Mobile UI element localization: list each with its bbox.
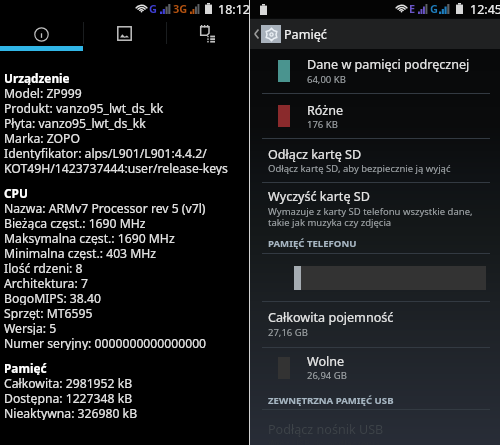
button[interactable]: Sprzęt	[166, 18, 249, 51]
staticText: 26,94 GB	[307, 369, 347, 382]
button[interactable]: Całkowita pojemność	[268, 309, 500, 326]
button[interactable]: Dane w pamięci podręcznej	[250, 56, 500, 86]
staticText: Produkt: vanzo95_lwt_ds_kk	[4, 100, 164, 115]
staticText: 64,00 KB	[307, 73, 346, 86]
button[interactable]: Zdjęcia	[83, 18, 166, 51]
staticText: Całkowita pojemność	[268, 309, 394, 326]
staticText: G	[430, 1, 438, 16]
staticText: 18:12	[218, 1, 250, 18]
other: Sprzęt	[200, 25, 215, 43]
button[interactable]: Wyczyść kartę SD	[268, 188, 500, 205]
button[interactable]: 27,16 GB	[268, 326, 500, 339]
staticText: KOT49H/1423737444:user/release-keys	[4, 160, 228, 175]
button[interactable]: Wymazuje z karty SD telefonu wszystkie d…	[268, 205, 500, 218]
staticText: G	[149, 1, 157, 16]
button[interactable]: Informacje	[0, 18, 83, 51]
staticText: Odłącz kartę SD, aby bezpiecznie ją wyją…	[268, 162, 451, 175]
staticText: Urządzenie	[4, 70, 70, 85]
staticText: Minimalna częst.: 403 MHz	[4, 245, 157, 260]
button[interactable]: Podłącz nośnik USB	[268, 421, 500, 438]
staticText: Ilość rdzeni: 8	[4, 260, 83, 275]
staticText: Różne	[307, 102, 344, 119]
staticText: 27,16 GB	[268, 326, 308, 339]
button[interactable]: Wolne	[250, 353, 500, 383]
staticText: Podłącz nośnik USB	[268, 421, 384, 438]
staticText: Wyczyść kartę SD	[268, 188, 370, 205]
staticText: 3G	[173, 1, 188, 16]
staticText: Model: ZP999	[4, 85, 82, 100]
other: Ustawienia	[265, 28, 278, 41]
staticText: Marka: ZOPO	[4, 130, 80, 145]
staticText: 176 KB	[307, 118, 338, 131]
button[interactable]: Odłącz kartę SD	[268, 146, 500, 163]
other: Informacje	[34, 27, 49, 42]
staticText: PAMIĘĆ TELEFONU	[268, 237, 357, 250]
staticText: Nazwa: ARMv7 Processor rev 5 (v7l)	[4, 200, 206, 215]
button[interactable]: Różne	[250, 102, 500, 132]
button[interactable]: Wstecz	[250, 19, 500, 49]
staticText: Wolne	[307, 353, 345, 370]
staticText: CPU	[4, 185, 28, 200]
staticText: Numer seryjny: 0000000000000000	[4, 335, 207, 350]
staticText: Pamięć	[4, 360, 47, 375]
staticText: Wymazuje z karty SD telefonu wszystkie d…	[268, 205, 473, 218]
staticText: Bieżąca częst.: 1690 MHz	[4, 215, 146, 230]
staticText: Identyfikator: alps/L901/L901:4.4.2/	[4, 145, 207, 160]
staticText: BogoMIPS: 38.40	[4, 290, 102, 305]
staticText: Pamięć	[284, 26, 327, 43]
staticText: takie jak muzyka czy zdjęcia	[268, 216, 392, 229]
staticText: 12:45	[470, 1, 500, 18]
staticText: Dostępna: 1227348 kB	[4, 390, 133, 405]
staticText: Architektura: 7	[4, 275, 88, 290]
staticText: ZEWNĘTRZNA PAMIĘĆ USB	[268, 394, 394, 407]
staticText: Maksymalna częst.: 1690 MHz	[4, 230, 175, 245]
other: Wstecz	[254, 29, 259, 39]
staticText: Nieaktywna: 326980 kB	[4, 405, 138, 420]
staticText: Płyta: vanzo95_lwt_ds_kk	[4, 115, 146, 130]
staticText: Całkowita: 2981952 kB	[4, 375, 133, 390]
other: Zdjęcia	[117, 26, 132, 41]
staticText: Dane w pamięci podręcznej	[307, 56, 470, 73]
staticText: Sprzęt: MT6595	[4, 305, 93, 320]
button[interactable]: takie jak muzyka czy zdjęcia	[268, 216, 500, 229]
staticText: E	[409, 1, 416, 16]
button[interactable]: Odłącz kartę SD, aby bezpiecznie ją wyją…	[268, 162, 500, 175]
staticText: Odłącz kartę SD	[268, 146, 362, 163]
staticText: Wersja: 5	[4, 320, 57, 335]
